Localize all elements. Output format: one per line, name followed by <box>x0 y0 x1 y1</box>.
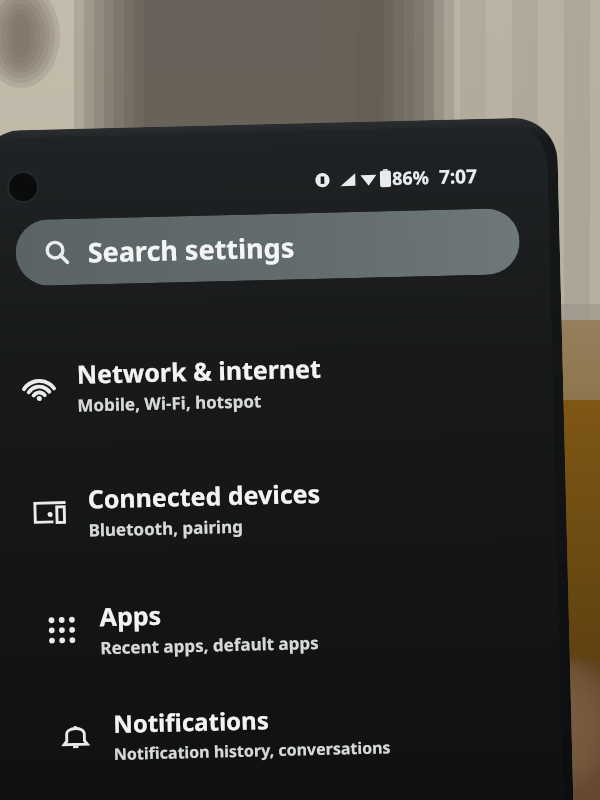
button[interactable]: Network and internet <box>0 326 522 439</box>
staticText: Connected devices <box>87 476 321 515</box>
button[interactable]: Search settings <box>15 208 520 286</box>
staticText: Network & internet <box>76 351 322 391</box>
other: Connected devices <box>33 495 67 530</box>
other: Notifications <box>58 719 93 754</box>
button[interactable]: Apps <box>23 568 545 681</box>
staticText: Apps <box>99 598 162 633</box>
staticText: Mobile, Wi-Fi, hotspot <box>77 389 262 417</box>
staticText: Search settings <box>87 228 295 270</box>
button[interactable]: Notifications <box>36 675 559 788</box>
staticText: Notifications <box>113 703 270 740</box>
staticText: Recent apps, default apps <box>100 631 320 659</box>
staticText: 7:07 <box>439 163 477 190</box>
staticText: Bluetooth, pairing <box>88 515 244 541</box>
staticText: Notification history, conversations <box>114 736 391 765</box>
staticText: 86% <box>392 165 429 191</box>
button[interactable]: Connected devices <box>11 451 533 563</box>
other: Network and internet <box>22 370 56 405</box>
other: Apps <box>44 613 79 648</box>
